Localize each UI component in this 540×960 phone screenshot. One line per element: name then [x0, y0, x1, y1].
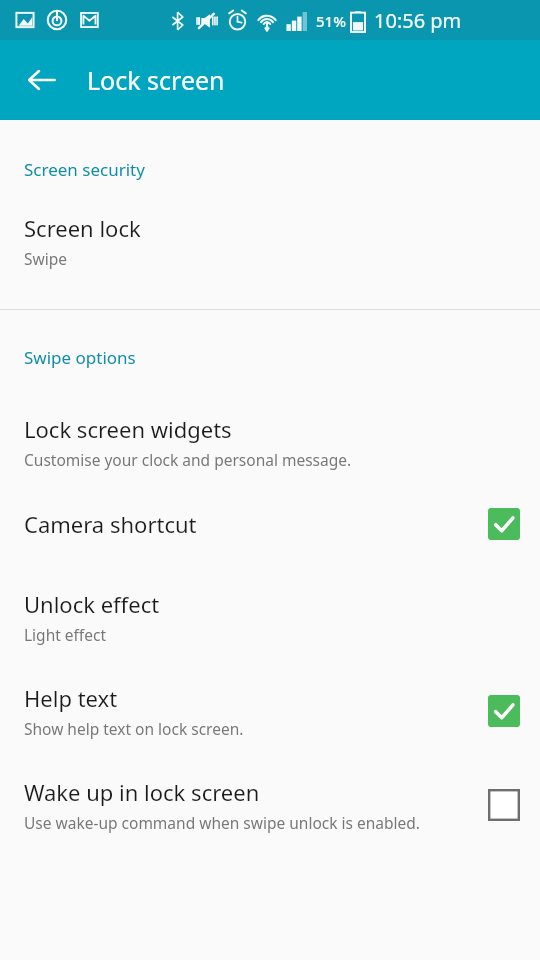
staticText: Screen security [24, 158, 145, 181]
button[interactable]: Screen lock [0, 213, 540, 269]
button[interactable]: Help text [0, 683, 540, 739]
button[interactable]: Wake up in lock screen [0, 777, 540, 833]
staticText: Show help text on lock screen. [24, 718, 244, 739]
staticText: Light effect [24, 624, 107, 645]
staticText: Lock screen widgets [24, 414, 232, 444]
staticText: 51% [316, 11, 346, 31]
button[interactable]: Checked [488, 508, 520, 540]
staticText: Customise your clock and personal messag… [24, 449, 352, 470]
button[interactable]: Back [14, 52, 70, 108]
button[interactable]: Unlock effect [0, 589, 540, 645]
staticText: Swipe options [24, 346, 136, 369]
button[interactable]: Checked [488, 695, 520, 727]
staticText: Screen lock [24, 213, 141, 243]
staticText: 10:56 pm [374, 7, 462, 34]
staticText: Help text [24, 683, 118, 713]
staticText: Wake up in lock screen [24, 777, 260, 807]
staticText: Lock screen [87, 63, 225, 97]
staticText: Unlock effect [24, 589, 160, 619]
button[interactable]: Camera shortcut [0, 508, 540, 540]
staticText: Use wake-up command when swipe unlock is… [24, 812, 420, 833]
button[interactable]: Lock screen widgets [0, 414, 540, 470]
button[interactable]: Unchecked [488, 789, 520, 821]
staticText: Swipe [24, 248, 67, 269]
staticText: Camera shortcut [24, 509, 197, 539]
